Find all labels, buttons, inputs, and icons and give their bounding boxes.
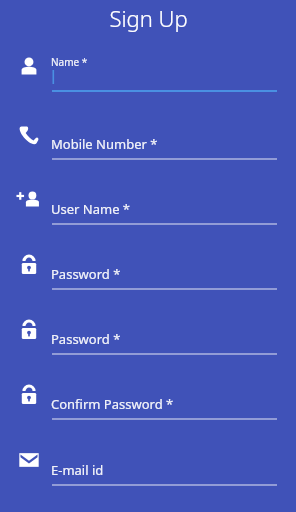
staticText: E-mail id — [51, 461, 104, 479]
staticText: Password * — [51, 265, 121, 283]
staticText: Mobile Number * — [51, 135, 158, 153]
staticText: Confirm Password * — [51, 395, 174, 413]
button[interactable]: Confirm Password — [51, 395, 277, 415]
button[interactable]: Password — [51, 265, 277, 285]
button[interactable]: Mobile Number — [51, 135, 277, 155]
button[interactable]: E-mail id — [51, 461, 277, 481]
button[interactable]: Sign Up — [0, 3, 296, 33]
staticText: User Name * — [51, 200, 131, 218]
button[interactable]: User Name — [51, 200, 277, 220]
staticText: Password * — [51, 330, 121, 348]
staticText: Name * — [51, 55, 88, 69]
staticText: Sign Up — [109, 3, 188, 33]
button[interactable]: Password — [51, 330, 277, 350]
button[interactable]: Name — [51, 55, 277, 69]
